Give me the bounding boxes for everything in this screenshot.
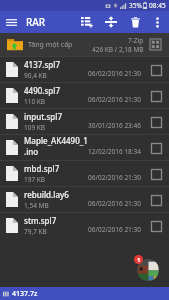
button[interactable]: 4490.spl7 (0, 83, 169, 108)
button[interactable]: Select all (75, 11, 99, 33)
staticText: 08:45 (149, 1, 166, 10)
staticText: 4137.7z (12, 289, 38, 299)
staticText: RAR (26, 15, 46, 29)
button[interactable]: Select 4137.spl7 (148, 62, 164, 78)
button[interactable]: Floating app shortcut (137, 259, 159, 281)
staticText: rebuild.lay6 (24, 189, 69, 200)
staticText: 4137.spl7 (24, 59, 61, 70)
button[interactable]: stm.spl7 (0, 213, 169, 238)
staticText: 197 KB (24, 175, 46, 184)
button[interactable]: Maple_AK4490_1.ino (0, 135, 169, 160)
staticText: 06/02/2016 21:30 (88, 173, 141, 182)
button[interactable]: More options (147, 12, 167, 32)
staticText: 110 KB (24, 97, 46, 106)
button[interactable]: Select rebuild.lay6 (148, 192, 164, 208)
staticText: 35% (129, 1, 142, 10)
staticText: 06/02/2016 21:30 (88, 95, 141, 104)
button[interactable]: Select Maple_AK4490_1.ino (148, 140, 164, 156)
button[interactable]: input.spl7 (0, 109, 169, 134)
staticText: 06/02/2016 21:30 (88, 225, 141, 234)
staticText: 1,54 MB (24, 201, 49, 210)
button[interactable]: Delete (123, 11, 147, 33)
staticText: 90,4 KB (24, 71, 47, 80)
staticText: 7-Zip (128, 36, 144, 45)
staticText: Maple_AK4490_1.ino (24, 135, 88, 157)
staticText: 06/02/2016 21:30 (88, 199, 141, 208)
button[interactable]: Open navigation menu (0, 11, 22, 33)
button[interactable]: mbd.spl7 (0, 161, 169, 186)
button[interactable]: Select 4490.spl7 (148, 88, 164, 104)
staticText: 79,7 KB (24, 227, 47, 236)
staticText: Tăng một cấp (28, 40, 73, 50)
staticText: 109 KB (24, 123, 46, 132)
button[interactable]: Select stm.spl7 (148, 218, 164, 234)
staticText: 06/02/2016 21:30 (88, 69, 141, 78)
staticText: 4490.spl7 (24, 85, 61, 96)
button[interactable]: Select input.spl7 (148, 114, 164, 130)
staticText: mbd.spl7 (24, 163, 60, 174)
staticText: 12/02/2016 18:34 (88, 147, 141, 156)
button[interactable]: 4137.spl7 (0, 57, 169, 82)
button[interactable]: Change view (149, 38, 162, 51)
button[interactable]: Extract (99, 11, 123, 33)
staticText: input.spl7 (24, 111, 62, 122)
button[interactable]: Select mbd.spl7 (148, 166, 164, 182)
staticText: 1 (137, 256, 141, 264)
button[interactable]: 4137.7z (0, 287, 169, 300)
staticText: stm.spl7 (24, 215, 57, 226)
button[interactable]: rebuild.lay6 (0, 187, 169, 212)
button[interactable]: Tăng một cấp (0, 33, 169, 56)
staticText: 426 KB / 2,18 MB (92, 45, 144, 54)
staticText: 30/01/2016 23:46 (88, 121, 141, 130)
